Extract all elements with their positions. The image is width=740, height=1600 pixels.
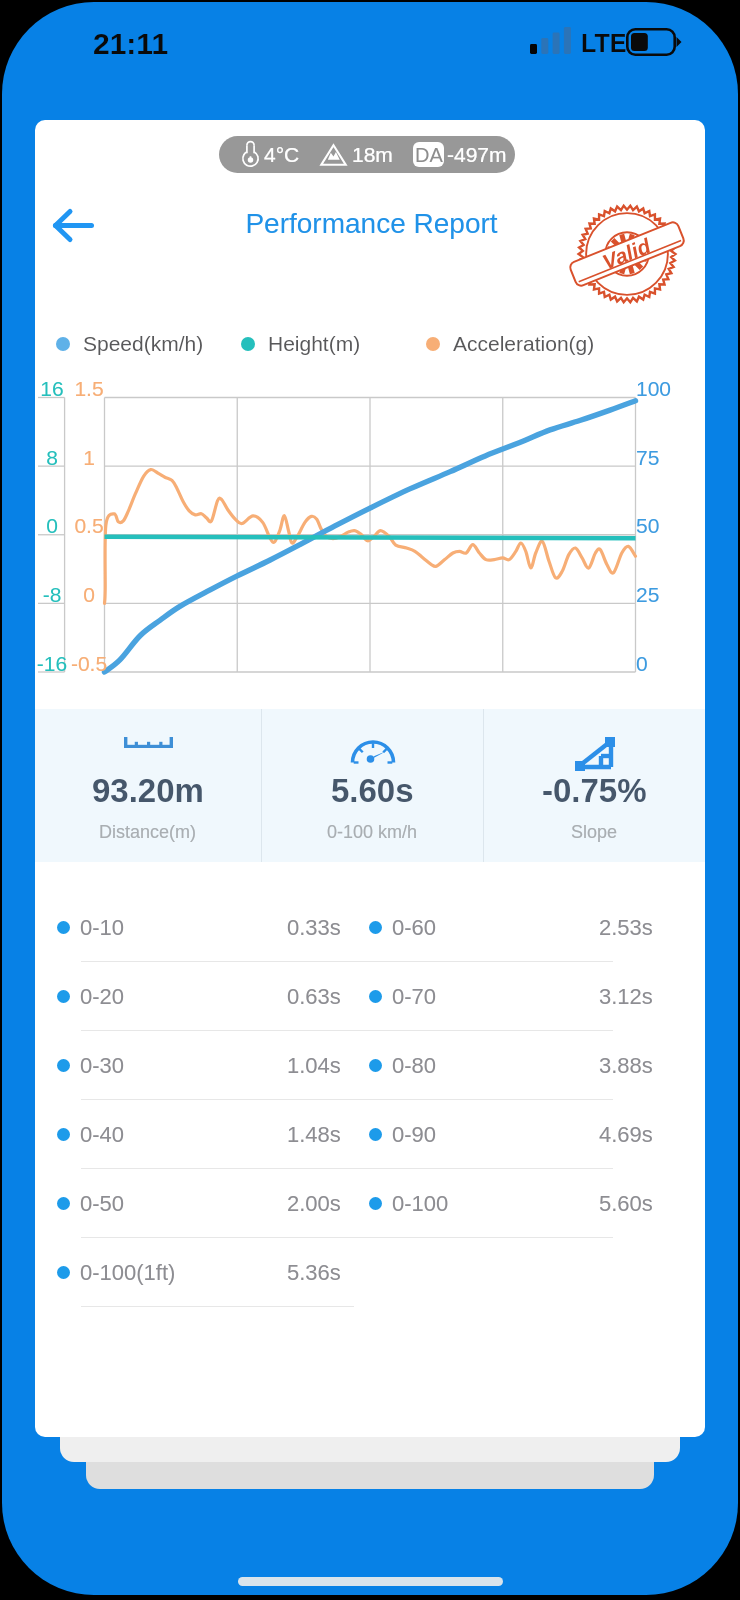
staticText: 5.36s (287, 1260, 341, 1285)
staticText: DA (415, 144, 443, 166)
staticText: LTE (581, 29, 627, 57)
staticText: 0-50 (80, 1191, 125, 1216)
button[interactable]: 0-50 (57, 1169, 347, 1238)
staticText: 3.88s (599, 1053, 653, 1078)
staticText: 0-70 (392, 984, 437, 1009)
button[interactable]: 0-30 (57, 1031, 347, 1100)
button[interactable]: Back (38, 193, 109, 257)
staticText: 0.5 (49, 514, 129, 537)
staticText: 0-40 (80, 1122, 125, 1147)
staticText: 1.04s (287, 1053, 341, 1078)
staticText: Acceleration(g) (453, 332, 595, 355)
staticText: -8 (12, 583, 92, 606)
staticText: 100 (636, 377, 706, 400)
staticText: 93.20m (92, 772, 204, 809)
button[interactable]: 0-10 (57, 893, 347, 962)
staticText: 0.33s (287, 915, 341, 940)
staticText: Slope (571, 822, 618, 842)
button[interactable]: 0-80 (369, 1031, 659, 1100)
button[interactable]: Speed(km/h) (56, 332, 241, 355)
staticText: 0-100(1ft) (80, 1260, 176, 1285)
staticText: 0-20 (80, 984, 125, 1009)
button[interactable]: 4°C (219, 136, 515, 173)
button[interactable]: Height(m) (241, 332, 426, 355)
button[interactable]: 0-20 (57, 962, 347, 1031)
staticText: 8 (12, 446, 92, 469)
staticText: 0-90 (392, 1122, 437, 1147)
staticText: 2.00s (287, 1191, 341, 1216)
staticText: Height(m) (268, 332, 361, 355)
button[interactable]: -0.75% (484, 709, 705, 862)
staticText: Distance(m) (99, 822, 197, 842)
button[interactable]: 0-100 (369, 1169, 659, 1238)
button[interactable]: 93.20m (35, 709, 261, 862)
staticText: 1.48s (287, 1122, 341, 1147)
staticText: 5.60s (599, 1191, 653, 1216)
staticText: 0 (636, 652, 706, 675)
staticText: -0.5 (49, 652, 129, 675)
staticText: 2.53s (599, 915, 653, 940)
staticText: 25 (636, 583, 706, 606)
staticText: 0.63s (287, 984, 341, 1009)
button[interactable]: Acceleration(g) (426, 332, 606, 355)
staticText: Performance Report (35, 208, 708, 239)
staticText: 0-100 (392, 1191, 449, 1216)
button[interactable]: 0-100(1ft) (57, 1238, 347, 1307)
staticText: 0-60 (392, 915, 437, 940)
staticText: 0-100 km/h (327, 822, 418, 842)
staticText: 3.12s (599, 984, 653, 1009)
staticText: Valid (599, 233, 654, 274)
staticText: -497m (447, 143, 507, 166)
staticText: 1.5 (49, 377, 129, 400)
staticText: 50 (636, 514, 706, 537)
button[interactable]: 5.60s (262, 709, 483, 862)
staticText: 21:11 (93, 27, 169, 61)
staticText: 18m (352, 143, 393, 166)
button[interactable]: 0-90 (369, 1100, 659, 1169)
button[interactable]: 0-70 (369, 962, 659, 1031)
staticText: 4°C (264, 143, 300, 166)
staticText: 0-80 (392, 1053, 437, 1078)
button[interactable]: 0-40 (57, 1100, 347, 1169)
staticText: 16 (12, 377, 92, 400)
button[interactable]: 0-60 (369, 893, 659, 962)
staticText: 1 (49, 446, 129, 469)
staticText: 0 (12, 514, 92, 537)
staticText: -16 (12, 652, 92, 675)
staticText: 4.69s (599, 1122, 653, 1147)
staticText: 75 (636, 446, 706, 469)
staticText: Speed(km/h) (83, 332, 204, 355)
staticText: -0.75% (542, 772, 647, 809)
staticText: 0-10 (80, 915, 125, 940)
staticText: 5.60s (331, 772, 414, 809)
staticText: 0-30 (80, 1053, 125, 1078)
staticText: 0 (49, 583, 129, 606)
